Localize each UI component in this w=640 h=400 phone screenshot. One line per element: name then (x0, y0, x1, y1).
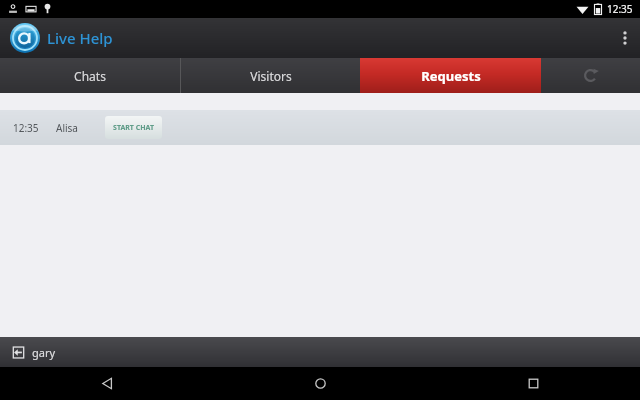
staticText: Requests (421, 67, 481, 85)
staticText: START CHAT (113, 123, 154, 133)
button[interactable]: Recent apps (427, 367, 640, 400)
button[interactable]: gary (0, 337, 640, 367)
button[interactable]: Back (0, 367, 214, 400)
button[interactable]: More options (610, 18, 640, 58)
button[interactable]: Refresh (541, 58, 640, 93)
button[interactable]: Requests (360, 58, 541, 93)
button[interactable]: 12:35 (0, 110, 640, 145)
staticText: 12:35 (607, 2, 633, 16)
button[interactable]: Home (214, 367, 427, 400)
button[interactable]: Chats (0, 58, 180, 93)
staticText: Live Help (47, 28, 113, 48)
button[interactable]: Visitors (181, 58, 360, 93)
staticText: Chats (74, 68, 106, 84)
staticText: gary (32, 345, 56, 360)
staticText: Alisa (56, 121, 78, 135)
staticText: 12:35 (13, 121, 39, 135)
button[interactable]: START CHAT (105, 116, 162, 139)
staticText: Visitors (250, 68, 292, 84)
